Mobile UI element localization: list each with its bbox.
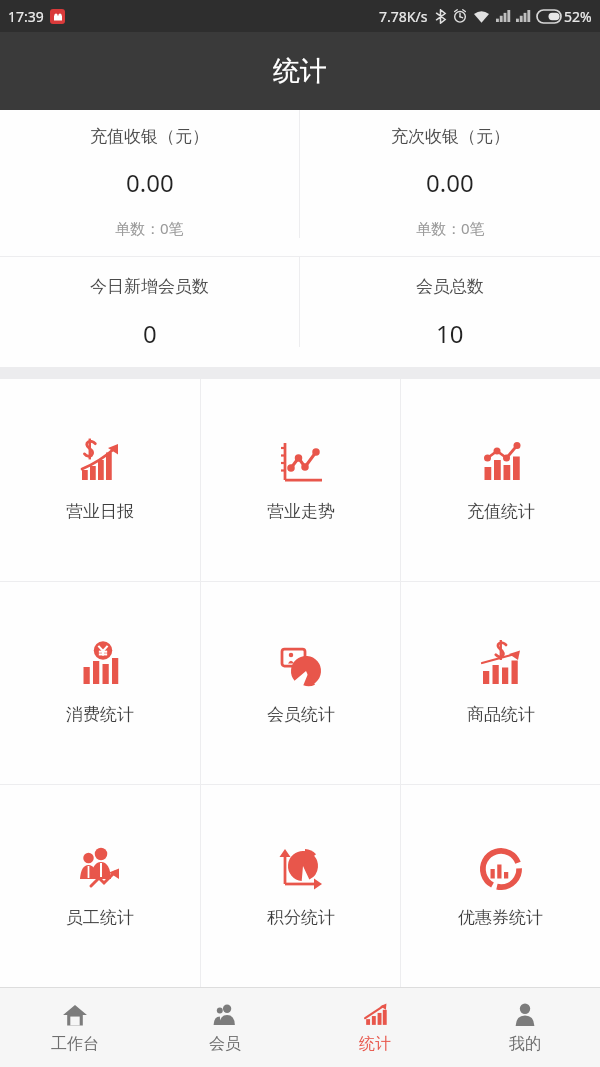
staticText: 今日新增会员数 <box>90 276 209 297</box>
staticText: 会员总数 <box>416 276 484 297</box>
button[interactable]: 会员总数 <box>300 257 600 367</box>
button[interactable]: 充值收银（元） <box>0 110 299 256</box>
staticText: 员工统计 <box>66 907 134 928</box>
button[interactable]: 充值统计 <box>401 379 600 581</box>
button[interactable]: 优惠券统计 <box>401 785 600 987</box>
staticText: 单数：0笔 <box>115 218 184 238</box>
staticText: 统计 <box>359 1034 391 1054</box>
staticText: 营业日报 <box>66 501 134 522</box>
staticText: 商品统计 <box>467 704 535 725</box>
button[interactable]: 今日新增会员数 <box>0 257 299 367</box>
staticText: 10 <box>436 317 464 350</box>
staticText: 充值统计 <box>467 501 535 522</box>
button[interactable]: 会员 <box>150 988 300 1067</box>
staticText: 积分统计 <box>267 907 335 928</box>
button[interactable]: 统计 <box>300 988 450 1067</box>
button[interactable]: 营业走势 <box>201 379 400 581</box>
staticText: 消费统计 <box>66 704 134 725</box>
staticText: 会员统计 <box>267 704 335 725</box>
staticText: 0.00 <box>426 166 474 199</box>
staticText: 52% <box>564 7 592 26</box>
staticText: 充次收银（元） <box>391 126 510 147</box>
button[interactable]: 员工统计 <box>0 785 200 987</box>
staticText: 优惠券统计 <box>458 907 543 928</box>
staticText: 会员 <box>209 1034 241 1054</box>
button[interactable]: 充次收银（元） <box>300 110 600 256</box>
staticText: 单数：0笔 <box>416 218 485 238</box>
staticText: 0.00 <box>126 166 174 199</box>
button[interactable]: 商品统计 <box>401 582 600 784</box>
button[interactable]: 消费统计 <box>0 582 200 784</box>
button[interactable]: 我的 <box>450 988 600 1067</box>
staticText: 充值收银（元） <box>90 126 209 147</box>
staticText: 7.78K/s <box>379 7 428 26</box>
button[interactable]: 营业日报 <box>0 379 200 581</box>
button[interactable]: 会员统计 <box>201 582 400 784</box>
button[interactable]: 工作台 <box>0 988 150 1067</box>
staticText: 17:39 <box>8 7 44 26</box>
staticText: 统计 <box>273 54 327 88</box>
staticText: 营业走势 <box>267 501 335 522</box>
button[interactable]: 积分统计 <box>201 785 400 987</box>
staticText: 0 <box>143 317 157 350</box>
staticText: 我的 <box>509 1034 541 1054</box>
staticText: 工作台 <box>51 1034 99 1054</box>
